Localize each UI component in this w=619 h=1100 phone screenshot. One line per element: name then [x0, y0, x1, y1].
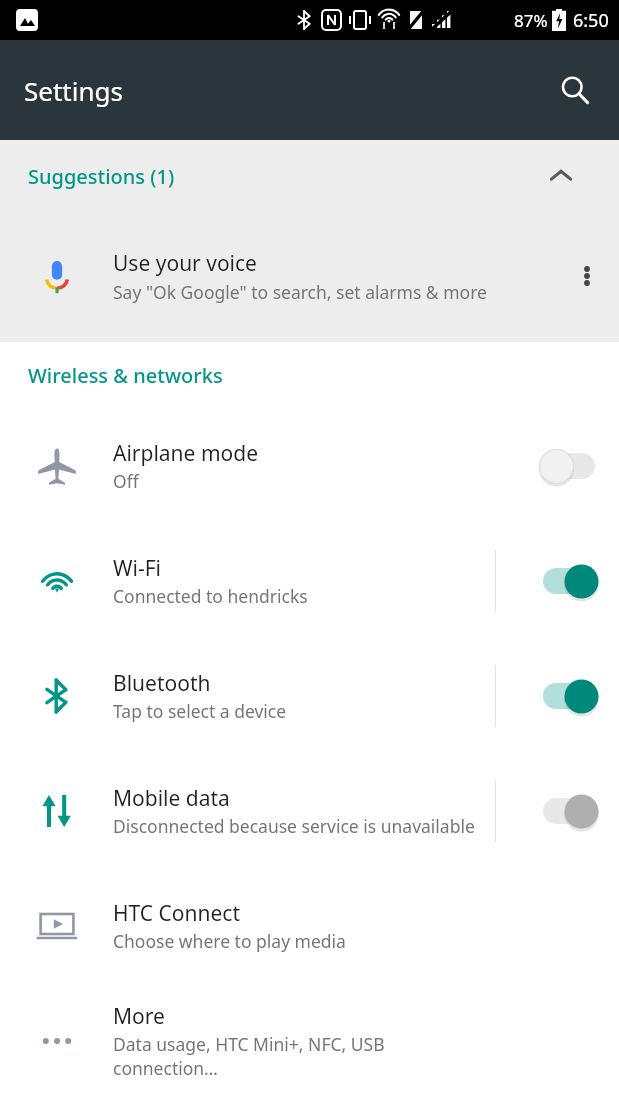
staticText: Suggestions (1) [28, 163, 175, 190]
staticText: Wi-Fi [113, 554, 162, 583]
button[interactable]: Mobile data [0, 753, 619, 868]
other: Collapse suggestions [541, 156, 581, 196]
button[interactable]: Mobile data switch [532, 784, 606, 838]
button[interactable]: More options [555, 212, 619, 340]
staticText: Say "Ok Google" to search, set alarms & … [113, 280, 487, 304]
staticText: Off [113, 469, 139, 493]
staticText: Airplane mode [113, 439, 259, 468]
staticText: Data usage, HTC Mini+, NFC, USB connecti… [113, 1032, 481, 1080]
button[interactable]: Bluetooth [0, 638, 619, 753]
staticText: HTC Connect [113, 899, 240, 928]
button[interactable]: More [0, 983, 619, 1098]
staticText: 6:50 [573, 8, 609, 33]
button[interactable]: HTC Connect [0, 868, 619, 983]
button[interactable]: Search [549, 64, 601, 116]
button[interactable]: Wi-Fi [0, 523, 619, 638]
staticText: Use your voice [113, 249, 257, 278]
button[interactable]: Suggestions (1) [0, 140, 619, 212]
staticText: Choose where to play media [113, 929, 346, 953]
staticText: Mobile data [113, 784, 230, 813]
button[interactable]: Use your voice [0, 212, 619, 340]
staticText: Disconnected because service is unavaila… [113, 814, 475, 838]
staticText: Connected to hendricks [113, 584, 308, 608]
button[interactable]: Airplane mode switch [532, 439, 606, 493]
staticText: 87% [514, 9, 548, 32]
button[interactable]: Airplane mode [0, 408, 619, 523]
button[interactable]: Bluetooth switch [532, 669, 606, 723]
button[interactable]: Wi-Fi switch [532, 554, 606, 608]
staticText: Wireless & networks [28, 362, 223, 389]
staticText: More [113, 1002, 165, 1031]
staticText: Settings [24, 73, 123, 108]
staticText: Bluetooth [113, 669, 211, 698]
staticText: Tap to select a device [113, 699, 287, 723]
